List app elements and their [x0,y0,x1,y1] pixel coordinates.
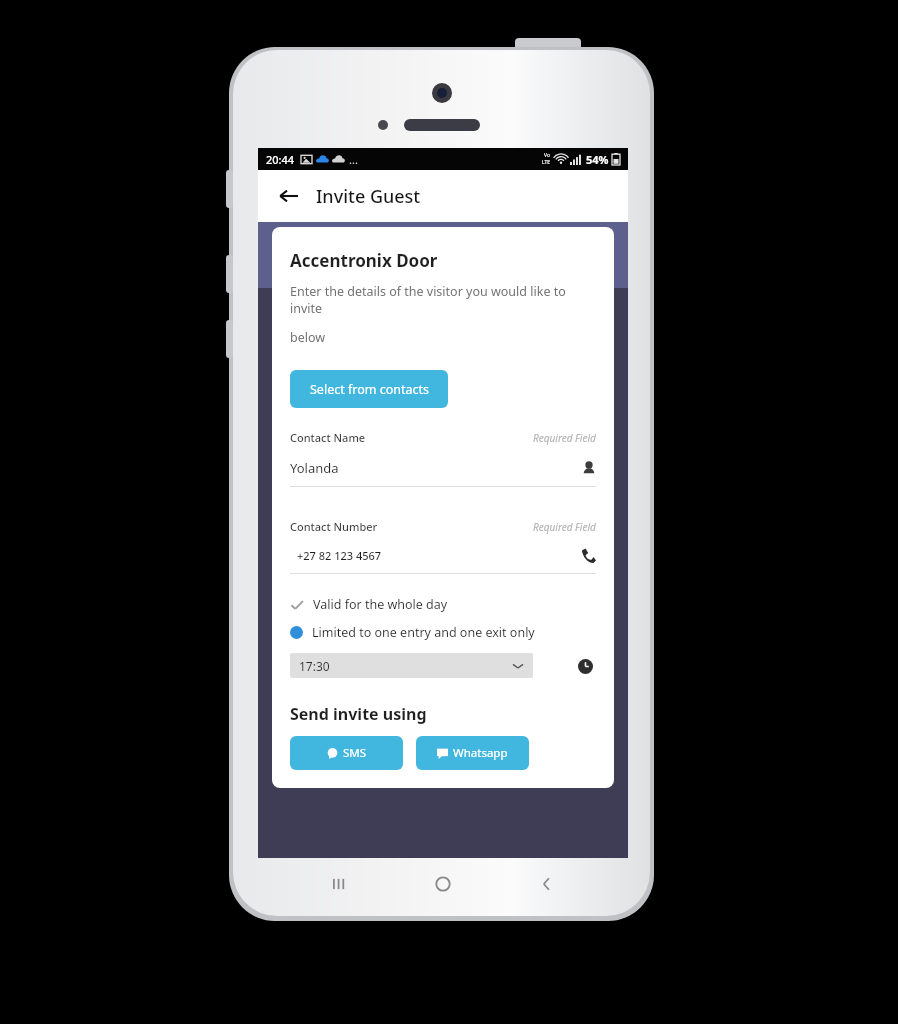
button[interactable]: Pick time [574,655,596,677]
staticText: 17:30 [299,658,330,674]
button[interactable]: Limited to one entry and one exit only [290,624,596,641]
staticText: SMS [343,745,367,761]
button[interactable]: Whatsapp [416,736,529,770]
staticText: Limited to one entry and one exit only [312,624,535,641]
staticText: Vo [544,152,550,159]
staticText: Required Field [533,431,596,445]
staticText: Contact Name [290,430,366,445]
staticText: Whatsapp [453,745,508,761]
staticText: Contact Number [290,519,378,534]
staticText: LTE [542,159,551,166]
staticText: Select from contacts [310,381,429,398]
button[interactable]: SMS [290,736,403,770]
staticText: Valid for the whole day [313,596,448,613]
staticText: Send invite using [290,703,427,725]
staticText: 54% [586,152,609,167]
staticText: Required Field [533,520,596,534]
button[interactable]: Recents [318,862,362,906]
button[interactable]: Back [272,179,306,213]
staticText: below [290,329,326,346]
button[interactable]: Home [421,862,465,906]
staticText: ... [349,152,358,167]
staticText: +27 82 123 4567 [297,548,382,563]
button[interactable]: Valid for the whole day [290,596,596,613]
staticText: 20:44 [266,152,295,167]
staticText: Invite Guest [316,184,421,209]
button[interactable]: Select from contacts [290,370,448,408]
staticText: Enter the details of the visitor you wou… [290,283,596,317]
button[interactable]: Back [525,862,569,906]
staticText: Yolanda [290,459,339,477]
staticText: Accentronix Door [290,249,438,272]
button[interactable]: 17:30 [290,653,533,678]
